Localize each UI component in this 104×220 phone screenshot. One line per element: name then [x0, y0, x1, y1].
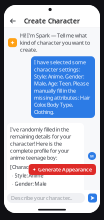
- staticText: I have selected some character settings:…: [34, 59, 90, 115]
- staticText: Hi! I'm Spark — Tell me what kind of cha…: [20, 32, 90, 53]
- staticText: Character config complete!: [10, 207, 76, 214]
- staticText: Age: Teen: [15, 188, 38, 196]
- staticText: [Character Settings]: [10, 163, 59, 170]
- staticText: ·: [12, 197, 13, 204]
- staticText: Generate Appearance: [38, 166, 92, 173]
- staticText: Create Character: [24, 17, 80, 25]
- button[interactable]: Back: [4, 14, 20, 28]
- button[interactable]: Send: [88, 193, 97, 202]
- staticText: ·: [12, 180, 13, 187]
- staticText: I've randomly filled in the remaining de…: [10, 126, 71, 161]
- button[interactable]: Generate Appearance: [29, 164, 96, 175]
- staticText: Hair Style: Short: [15, 197, 53, 204]
- staticText: ·: [12, 172, 13, 179]
- staticText: Style: Anime: [15, 172, 44, 179]
- staticText: Describe your character...: [11, 194, 72, 202]
- staticText: Gender: Male: [15, 180, 47, 187]
- staticText: ·: [12, 188, 13, 196]
- staticText: M: [90, 153, 94, 159]
